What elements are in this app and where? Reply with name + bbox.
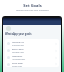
staticText: Read a book bbox=[12, 48, 24, 51]
staticText: Meditation bbox=[12, 55, 23, 58]
button[interactable]: Morning run bbox=[5, 40, 59, 47]
staticText: 2 litres a day bbox=[12, 65, 22, 67]
button[interactable]: Meditation bbox=[5, 54, 59, 61]
button[interactable]: Read a book bbox=[5, 47, 59, 54]
staticText: WhatsApp your goals bbox=[5, 32, 32, 35]
staticText: 20 pages a day bbox=[12, 51, 24, 53]
staticText: Morning run bbox=[12, 41, 24, 44]
staticText: 10 minutes daily bbox=[12, 58, 25, 60]
button[interactable]: Drink water bbox=[5, 61, 59, 67]
staticText: Set Goals bbox=[23, 3, 42, 8]
staticText: 5 km every day bbox=[12, 44, 24, 46]
staticText: Drink water bbox=[12, 62, 23, 65]
staticText: Identify and track your ambitions bbox=[16, 9, 49, 12]
